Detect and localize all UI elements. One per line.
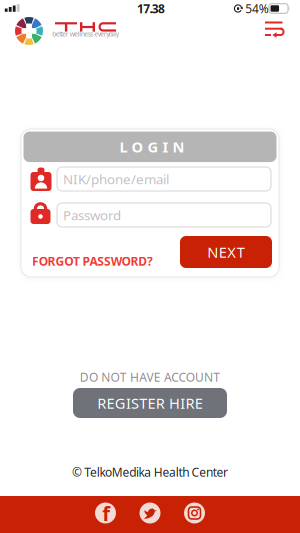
button[interactable]: NIK/phone/email (57, 167, 271, 191)
button[interactable]: FORGOT PASSWORD? (32, 253, 153, 269)
button[interactable]: Twitter (139, 502, 160, 523)
staticText: © TelkoMedika Health Center (72, 464, 228, 480)
staticText: NIK/phone/email (63, 170, 169, 188)
staticText: Password (63, 206, 121, 224)
staticText: DO NOT HAVE ACCOUNT (80, 369, 220, 385)
button[interactable]: REGISTER HIRE (73, 388, 227, 418)
button[interactable]: Sign in (265, 21, 284, 38)
button[interactable]: NEXT (180, 236, 272, 268)
staticText: REGISTER HIRE (97, 393, 203, 413)
button[interactable]: Instagram (184, 502, 205, 523)
staticText: f (102, 500, 110, 527)
button[interactable]: Password (57, 203, 271, 227)
staticText: LOGIN (119, 137, 184, 157)
staticText: 17.38 (137, 0, 165, 16)
staticText: FORGOT PASSWORD? (32, 253, 153, 269)
staticText: better wellness everyday (52, 29, 119, 38)
button[interactable]: Facebook (95, 502, 116, 523)
staticText: NEXT (207, 242, 245, 262)
staticText: 54% (245, 0, 269, 16)
